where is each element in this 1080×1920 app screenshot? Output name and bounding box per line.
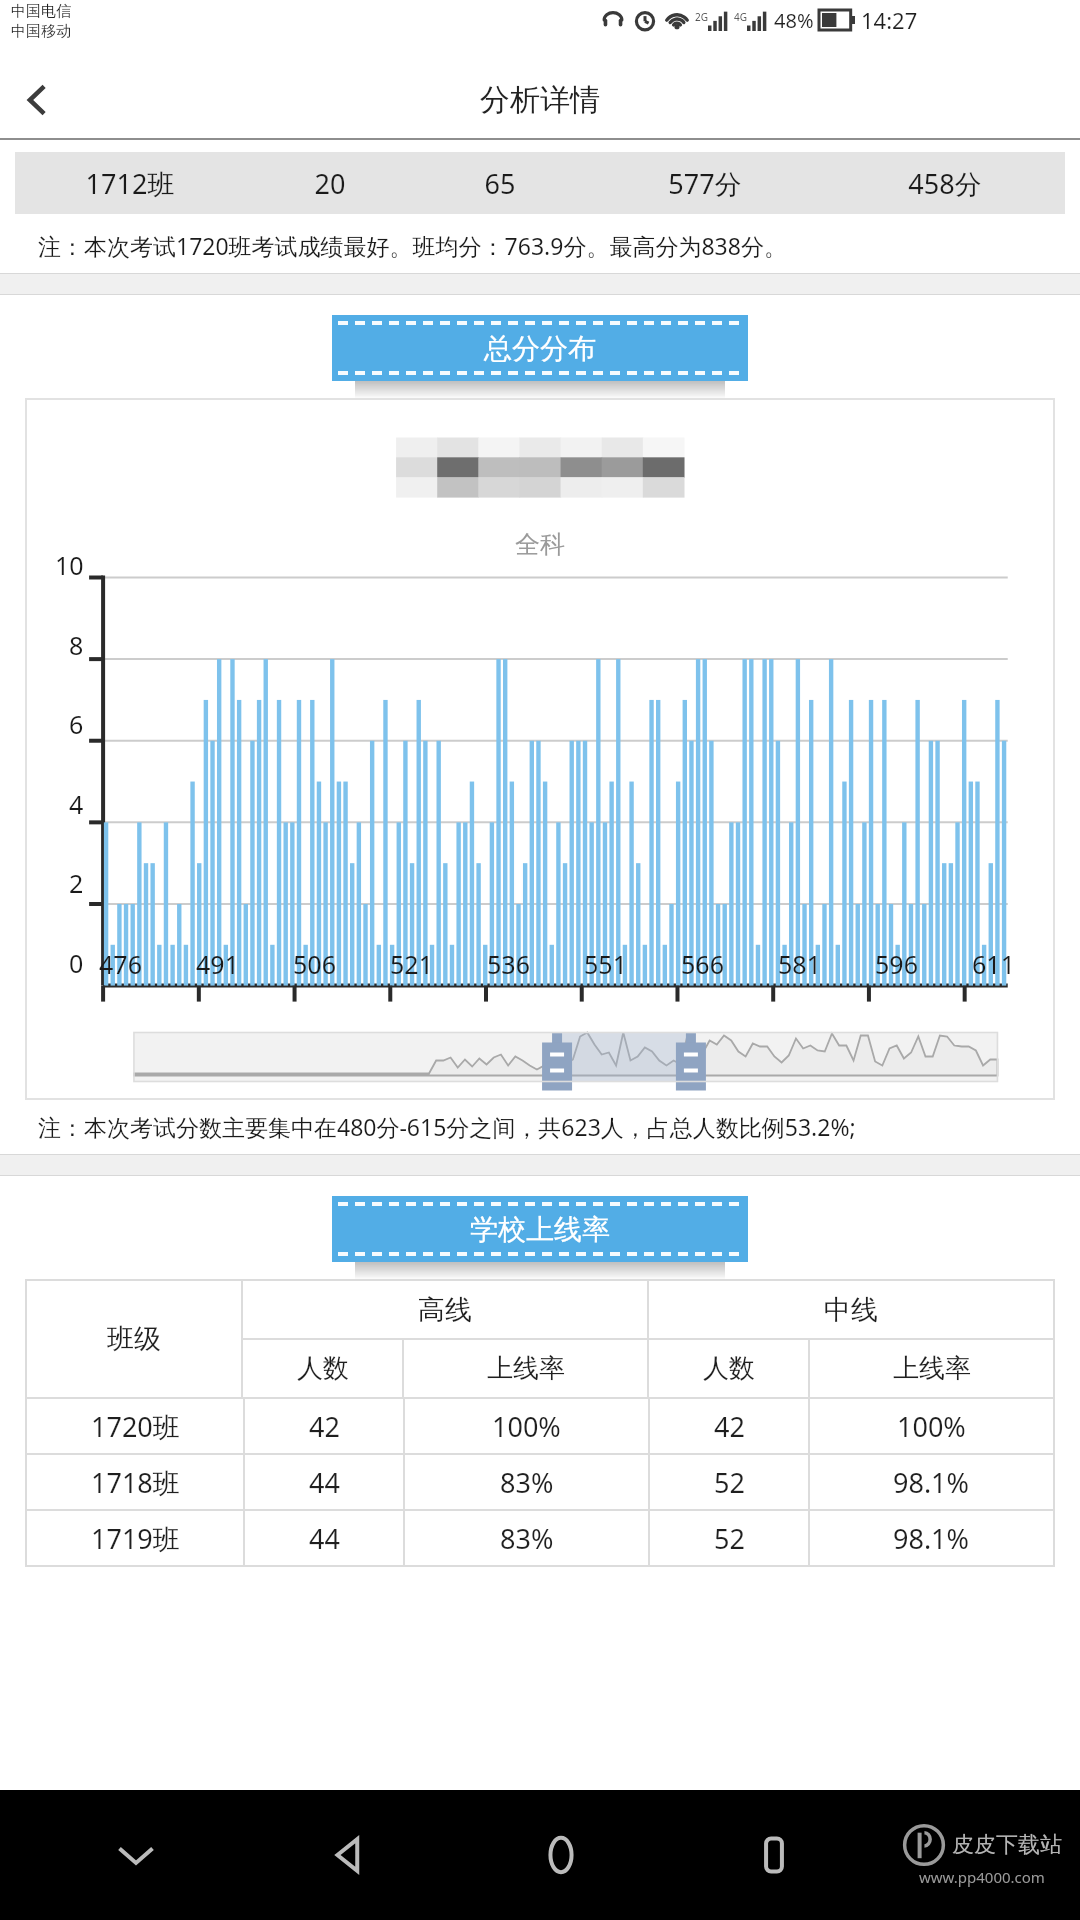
staticText: 44: [309, 1464, 340, 1501]
staticText: 10: [55, 548, 84, 582]
staticText: 491: [169, 947, 266, 981]
staticText: 分析详情: [480, 81, 600, 119]
staticText: 506: [266, 947, 363, 981]
staticText: 高线: [418, 1293, 472, 1327]
staticText: 皮皮下载站: [952, 1831, 1062, 1859]
staticText: 20: [245, 165, 415, 202]
staticText: 8: [69, 628, 84, 662]
staticText: 83%: [500, 1464, 554, 1501]
staticText: 98.1%: [893, 1520, 970, 1557]
staticText: 551: [557, 947, 654, 981]
staticText: 学校上线率: [470, 1212, 610, 1247]
staticText: 476: [72, 947, 169, 981]
staticText: 577分: [585, 165, 825, 202]
staticText: 1718班: [91, 1464, 180, 1501]
staticText: 42: [309, 1408, 340, 1445]
staticText: 83%: [500, 1520, 554, 1557]
button[interactable]: 1720班: [26, 1398, 1054, 1454]
button[interactable]: Back: [0, 62, 76, 138]
staticText: 100%: [897, 1408, 966, 1445]
staticText: www.pp4000.com: [919, 1867, 1045, 1887]
staticText: 4G: [734, 10, 747, 24]
staticText: 48%: [774, 7, 814, 34]
staticText: 1712班: [15, 165, 245, 202]
staticText: 0: [69, 946, 84, 980]
staticText: 65: [415, 165, 585, 202]
staticText: 52: [714, 1464, 745, 1501]
staticText: 上线率: [893, 1352, 971, 1385]
staticText: 1719班: [91, 1520, 180, 1557]
staticText: 6: [69, 707, 84, 741]
button[interactable]: 学校上线率: [332, 1196, 748, 1262]
staticText: 总分分布: [484, 331, 596, 366]
staticText: 521: [363, 947, 460, 981]
staticText: 566: [654, 947, 751, 981]
staticText: 中国移动: [11, 22, 71, 41]
staticText: 98.1%: [893, 1464, 970, 1501]
button[interactable]: 总分分布: [332, 315, 748, 381]
staticText: 全科: [515, 529, 565, 560]
staticText: 注：本次考试分数主要集中在480分-615分之间，共623人，占总人数比例53.…: [38, 1111, 856, 1142]
button[interactable]: Hide keyboard: [30, 1790, 242, 1920]
staticText: 44: [309, 1520, 340, 1557]
staticText: 2: [69, 866, 84, 900]
button[interactable]: 1712班: [15, 152, 1065, 214]
staticText: 100%: [492, 1408, 561, 1445]
button[interactable]: 1719班: [26, 1510, 1054, 1566]
staticText: 4: [69, 787, 84, 821]
staticText: 中国电信: [11, 2, 71, 21]
staticText: 注：本次考试1720班考试成绩最好。班均分：763.9分。最高分为838分。: [38, 230, 787, 261]
staticText: 596: [848, 947, 945, 981]
staticText: 2G: [695, 10, 708, 24]
staticText: 536: [460, 947, 557, 981]
staticText: 611: [945, 947, 1042, 981]
button[interactable]: Recents: [667, 1790, 880, 1920]
staticText: 1720班: [91, 1408, 180, 1445]
staticText: 14:27: [861, 5, 918, 35]
staticText: 458分: [825, 165, 1065, 202]
button[interactable]: Back: [242, 1790, 454, 1920]
staticText: 581: [751, 947, 848, 981]
staticText: 42: [714, 1408, 745, 1445]
staticText: 52: [714, 1520, 745, 1557]
button[interactable]: 1718班: [26, 1454, 1054, 1510]
staticText: 中线: [824, 1293, 878, 1327]
staticText: 人数: [297, 1352, 349, 1385]
staticText: 人数: [703, 1352, 755, 1385]
staticText: 上线率: [487, 1352, 565, 1385]
staticText: 班级: [107, 1322, 161, 1356]
button[interactable]: Home: [454, 1790, 667, 1920]
